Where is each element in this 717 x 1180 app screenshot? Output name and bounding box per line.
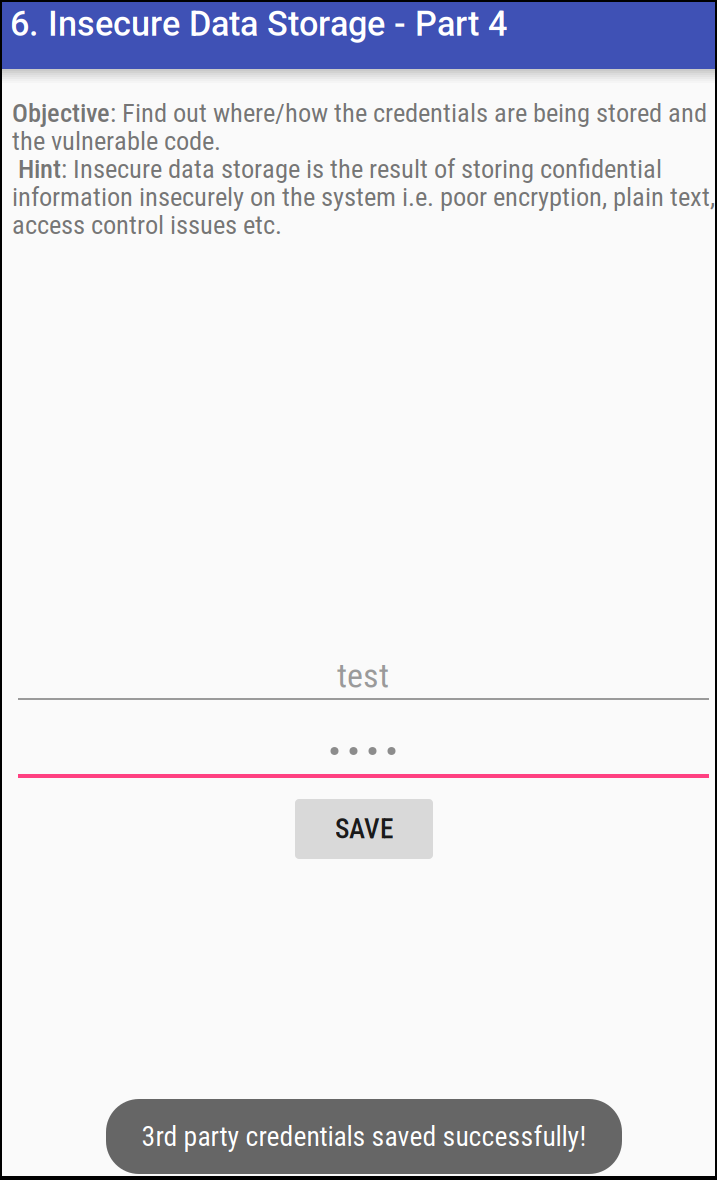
staticText: SAVE	[335, 813, 393, 845]
staticText: information insecurely on the system i.e…	[12, 181, 715, 212]
button[interactable]: SAVE	[295, 799, 433, 859]
staticText: 3rd party credentials saved successfully…	[141, 1120, 586, 1153]
staticText: access control issues etc.	[12, 209, 282, 240]
staticText: Objective: Find out where/how the creden…	[12, 98, 707, 128]
staticText: Hint: Insecure data storage is the resul…	[12, 154, 662, 184]
staticText: 6. Insecure Data Storage - Part 4	[10, 4, 507, 44]
staticText: test	[337, 656, 389, 696]
staticText: the vulnerable code.	[12, 125, 221, 156]
